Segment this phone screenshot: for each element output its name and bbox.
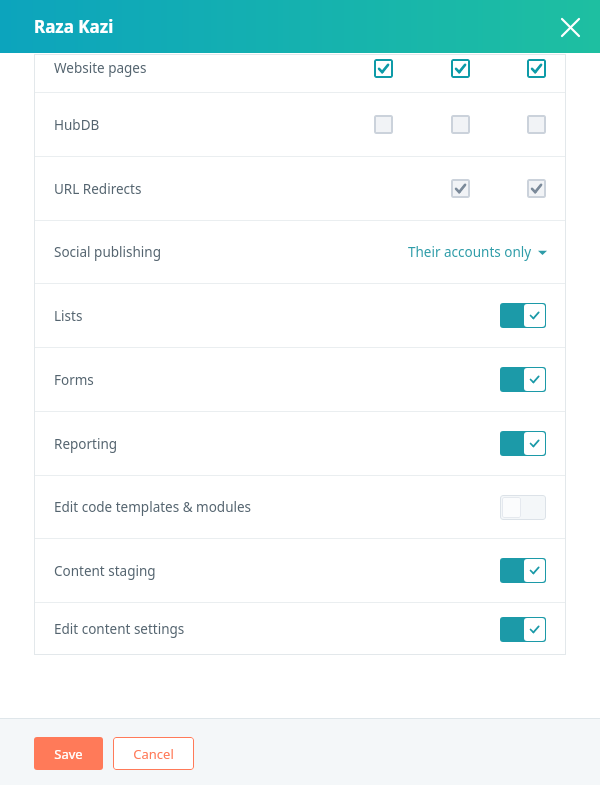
staticText: URL Redirects xyxy=(54,180,142,198)
button[interactable]: Edit code templates & modules xyxy=(34,476,566,538)
button[interactable]: HubDB xyxy=(34,93,566,156)
button[interactable]: Enabled toggle xyxy=(500,431,546,456)
button[interactable]: Their accounts only xyxy=(408,243,547,261)
staticText: Edit content settings xyxy=(54,620,185,638)
button[interactable]: Enabled toggle xyxy=(500,367,546,392)
button[interactable]: Checked xyxy=(451,179,470,198)
button[interactable]: Checked xyxy=(527,179,546,198)
button[interactable]: Edit content settings xyxy=(34,603,566,655)
button[interactable]: URL Redirects xyxy=(34,157,566,220)
staticText: Cancel xyxy=(133,745,174,763)
staticText: Save xyxy=(54,745,83,763)
staticText: Reporting xyxy=(54,435,118,453)
staticText: Forms xyxy=(54,371,94,389)
button[interactable]: Unchecked xyxy=(374,115,393,134)
staticText: Edit code templates & modules xyxy=(54,498,252,516)
button[interactable]: Content staging xyxy=(34,539,566,602)
button[interactable]: Reporting xyxy=(34,412,566,475)
staticText: Social publishing xyxy=(54,243,161,261)
button[interactable]: Save xyxy=(34,737,103,770)
button[interactable]: Lists xyxy=(34,284,566,347)
staticText: Lists xyxy=(54,307,83,325)
button[interactable]: Enabled toggle xyxy=(500,617,546,642)
staticText: HubDB xyxy=(54,116,100,134)
staticText: Raza Kazi xyxy=(34,15,114,38)
button[interactable]: Unchecked xyxy=(527,115,546,134)
button[interactable]: Checked xyxy=(451,59,470,78)
button[interactable]: Enabled toggle xyxy=(500,558,546,583)
button[interactable]: Checked xyxy=(374,59,393,78)
staticText: Their accounts only xyxy=(408,243,532,261)
button[interactable]: Website pages xyxy=(34,54,566,92)
staticText: Website pages xyxy=(54,59,147,77)
button[interactable]: Unchecked xyxy=(451,115,470,134)
button[interactable]: Cancel xyxy=(113,737,194,770)
button[interactable]: Enabled toggle xyxy=(500,303,546,328)
button[interactable]: Disabled toggle xyxy=(500,495,546,520)
button[interactable]: Checked xyxy=(527,59,546,78)
button[interactable]: Social publishing xyxy=(34,221,566,283)
button[interactable]: Close xyxy=(554,11,586,43)
button[interactable]: Forms xyxy=(34,348,566,411)
staticText: Content staging xyxy=(54,562,156,580)
